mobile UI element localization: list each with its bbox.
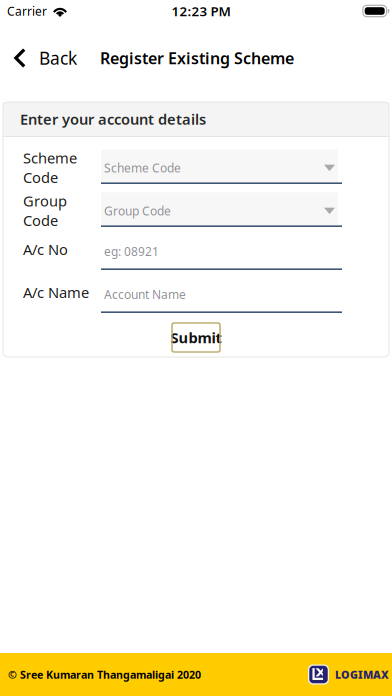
staticText: eg: 08921 [104, 243, 159, 259]
staticText: Group [23, 191, 67, 210]
staticText: © Sree Kumaran Thangamaligai 2020 [8, 667, 201, 682]
staticText: Account Name [104, 286, 186, 302]
staticText: Scheme Code [104, 160, 181, 176]
staticText: A/c No [23, 239, 68, 259]
staticText: Back [39, 46, 77, 69]
staticText: Group Code [104, 203, 171, 219]
staticText: Register Existing Scheme [100, 47, 294, 69]
staticText: Carrier [7, 3, 47, 19]
button[interactable]: Back [0, 36, 89, 80]
button[interactable]: Scheme [3, 146, 389, 189]
staticText: Code [23, 167, 58, 187]
button[interactable]: Group [3, 189, 389, 232]
staticText: 12:23 PM [171, 2, 230, 20]
button[interactable]: A/c Name [3, 275, 389, 318]
staticText: Scheme [23, 148, 77, 167]
staticText: Code [23, 210, 58, 230]
button[interactable]: Submit [172, 323, 220, 352]
button[interactable]: A/c No [3, 232, 389, 275]
staticText: A/c Name [23, 282, 89, 302]
staticText: Submit [170, 328, 221, 347]
staticText: Enter your account details [20, 109, 206, 129]
staticText: LOGIMAX [335, 667, 389, 682]
